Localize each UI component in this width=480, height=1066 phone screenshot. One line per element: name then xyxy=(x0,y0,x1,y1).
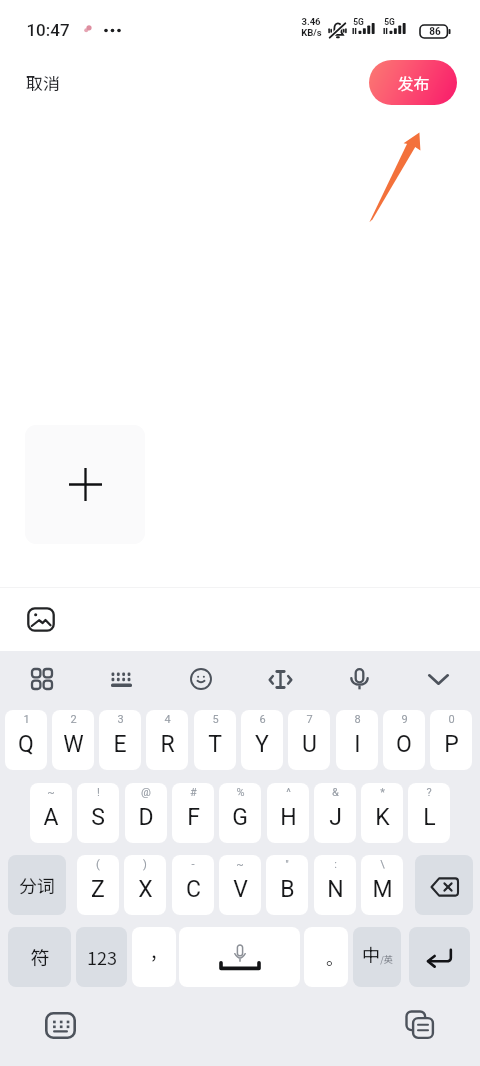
staticText: L xyxy=(423,804,436,831)
button[interactable]: 取消 xyxy=(14,62,72,102)
staticText: G xyxy=(232,804,248,831)
staticText: ) xyxy=(143,858,147,871)
button[interactable]: ^ xyxy=(267,783,309,843)
button[interactable]: \ xyxy=(361,855,403,915)
button[interactable]: " xyxy=(266,855,308,915)
button[interactable]: Voice input xyxy=(340,660,378,698)
button[interactable]: 123 xyxy=(76,927,127,987)
button[interactable]: 。 xyxy=(304,927,348,987)
staticText: ! xyxy=(97,786,100,799)
staticText: * xyxy=(380,786,385,799)
button[interactable]: , xyxy=(132,927,176,987)
button[interactable]: 1 xyxy=(5,710,47,770)
button[interactable]: ~ xyxy=(219,855,261,915)
staticText: Z xyxy=(91,876,105,903)
staticText: J xyxy=(329,804,342,831)
staticText: F xyxy=(187,804,200,831)
button[interactable]: Hide keyboard xyxy=(419,660,457,698)
staticText: 123 xyxy=(87,944,117,970)
button[interactable]: 分词 xyxy=(8,855,66,915)
staticText: - xyxy=(191,858,195,871)
staticText: 。 xyxy=(326,945,343,970)
staticText: : xyxy=(334,858,337,871)
staticText: 中 xyxy=(362,941,380,967)
staticText: 0 xyxy=(448,713,455,726)
staticText: S xyxy=(91,804,105,831)
button[interactable]: ~ xyxy=(30,783,72,843)
button[interactable]: Insert image xyxy=(13,597,69,641)
button[interactable]: 发布 xyxy=(369,60,457,105)
button[interactable]: 4 xyxy=(146,710,188,770)
staticText: 86 xyxy=(429,26,441,38)
staticText: ? xyxy=(426,786,432,799)
button[interactable]: 0 xyxy=(430,710,472,770)
button[interactable]: ) xyxy=(124,855,166,915)
staticText: V xyxy=(233,876,248,903)
button[interactable]: 3 xyxy=(99,710,141,770)
staticText: 取消 xyxy=(26,70,60,95)
staticText: R xyxy=(160,731,175,758)
button[interactable]: Add photo xyxy=(25,425,145,544)
staticText: 分词 xyxy=(19,872,55,898)
staticText: 9 xyxy=(401,713,408,726)
staticText: P xyxy=(444,731,459,758)
staticText: @ xyxy=(141,786,151,799)
staticText: 8 xyxy=(354,713,361,726)
button[interactable]: ( xyxy=(77,855,119,915)
staticText: 5G xyxy=(353,17,364,27)
staticText: ~ xyxy=(236,858,244,871)
staticText: 5 xyxy=(212,713,219,726)
staticText: 3 xyxy=(117,713,124,726)
button[interactable]: 6 xyxy=(241,710,283,770)
button[interactable]: & xyxy=(314,783,356,843)
staticText: M xyxy=(372,876,393,903)
staticText: C xyxy=(186,876,201,903)
button[interactable]: Clipboard xyxy=(400,1005,440,1045)
button[interactable]: Move cursor xyxy=(261,660,299,698)
button[interactable]: 5 xyxy=(194,710,236,770)
staticText: 4 xyxy=(164,713,171,726)
button[interactable]: 7 xyxy=(288,710,330,770)
button[interactable]: 中 xyxy=(353,927,401,987)
button[interactable]: ? xyxy=(408,783,450,843)
button[interactable]: % xyxy=(219,783,261,843)
staticText: & xyxy=(332,786,339,799)
staticText: /英 xyxy=(380,953,393,966)
button[interactable]: Keyboard settings xyxy=(102,660,140,698)
button[interactable]: 8 xyxy=(336,710,378,770)
button[interactable]: Enter xyxy=(409,927,470,987)
button[interactable]: Space xyxy=(179,927,300,987)
button[interactable]: - xyxy=(172,855,214,915)
button[interactable]: Switch input method xyxy=(40,1005,80,1045)
staticText: \ xyxy=(380,858,385,871)
staticText: 1 xyxy=(23,713,30,726)
button[interactable]: Symbols panel xyxy=(23,660,61,698)
button[interactable]: 2 xyxy=(52,710,94,770)
staticText: K xyxy=(375,804,390,831)
button[interactable]: @ xyxy=(125,783,167,843)
staticText: ~ xyxy=(47,786,55,799)
staticText: A xyxy=(43,804,59,831)
button[interactable]: ! xyxy=(77,783,119,843)
staticText: 6 xyxy=(259,713,266,726)
button[interactable]: * xyxy=(361,783,403,843)
staticText: 7 xyxy=(306,713,313,726)
staticText: # xyxy=(190,786,197,799)
staticText: U xyxy=(302,731,317,758)
button[interactable]: Backspace xyxy=(415,855,473,915)
button[interactable]: # xyxy=(172,783,214,843)
staticText: 符 xyxy=(30,943,50,971)
button[interactable]: 9 xyxy=(383,710,425,770)
button[interactable]: 符 xyxy=(8,927,71,987)
staticText: KB/s xyxy=(301,27,322,38)
staticText: ^ xyxy=(286,786,291,799)
button[interactable]: : xyxy=(314,855,356,915)
button[interactable]: Emoji xyxy=(182,660,220,698)
staticText: W xyxy=(63,731,84,758)
staticText: X xyxy=(138,876,153,903)
staticText: 2 xyxy=(70,713,77,726)
staticText: 发布 xyxy=(397,71,430,94)
staticText: 10:47 xyxy=(26,20,70,40)
staticText: I xyxy=(354,731,361,758)
staticText: E xyxy=(113,731,127,758)
